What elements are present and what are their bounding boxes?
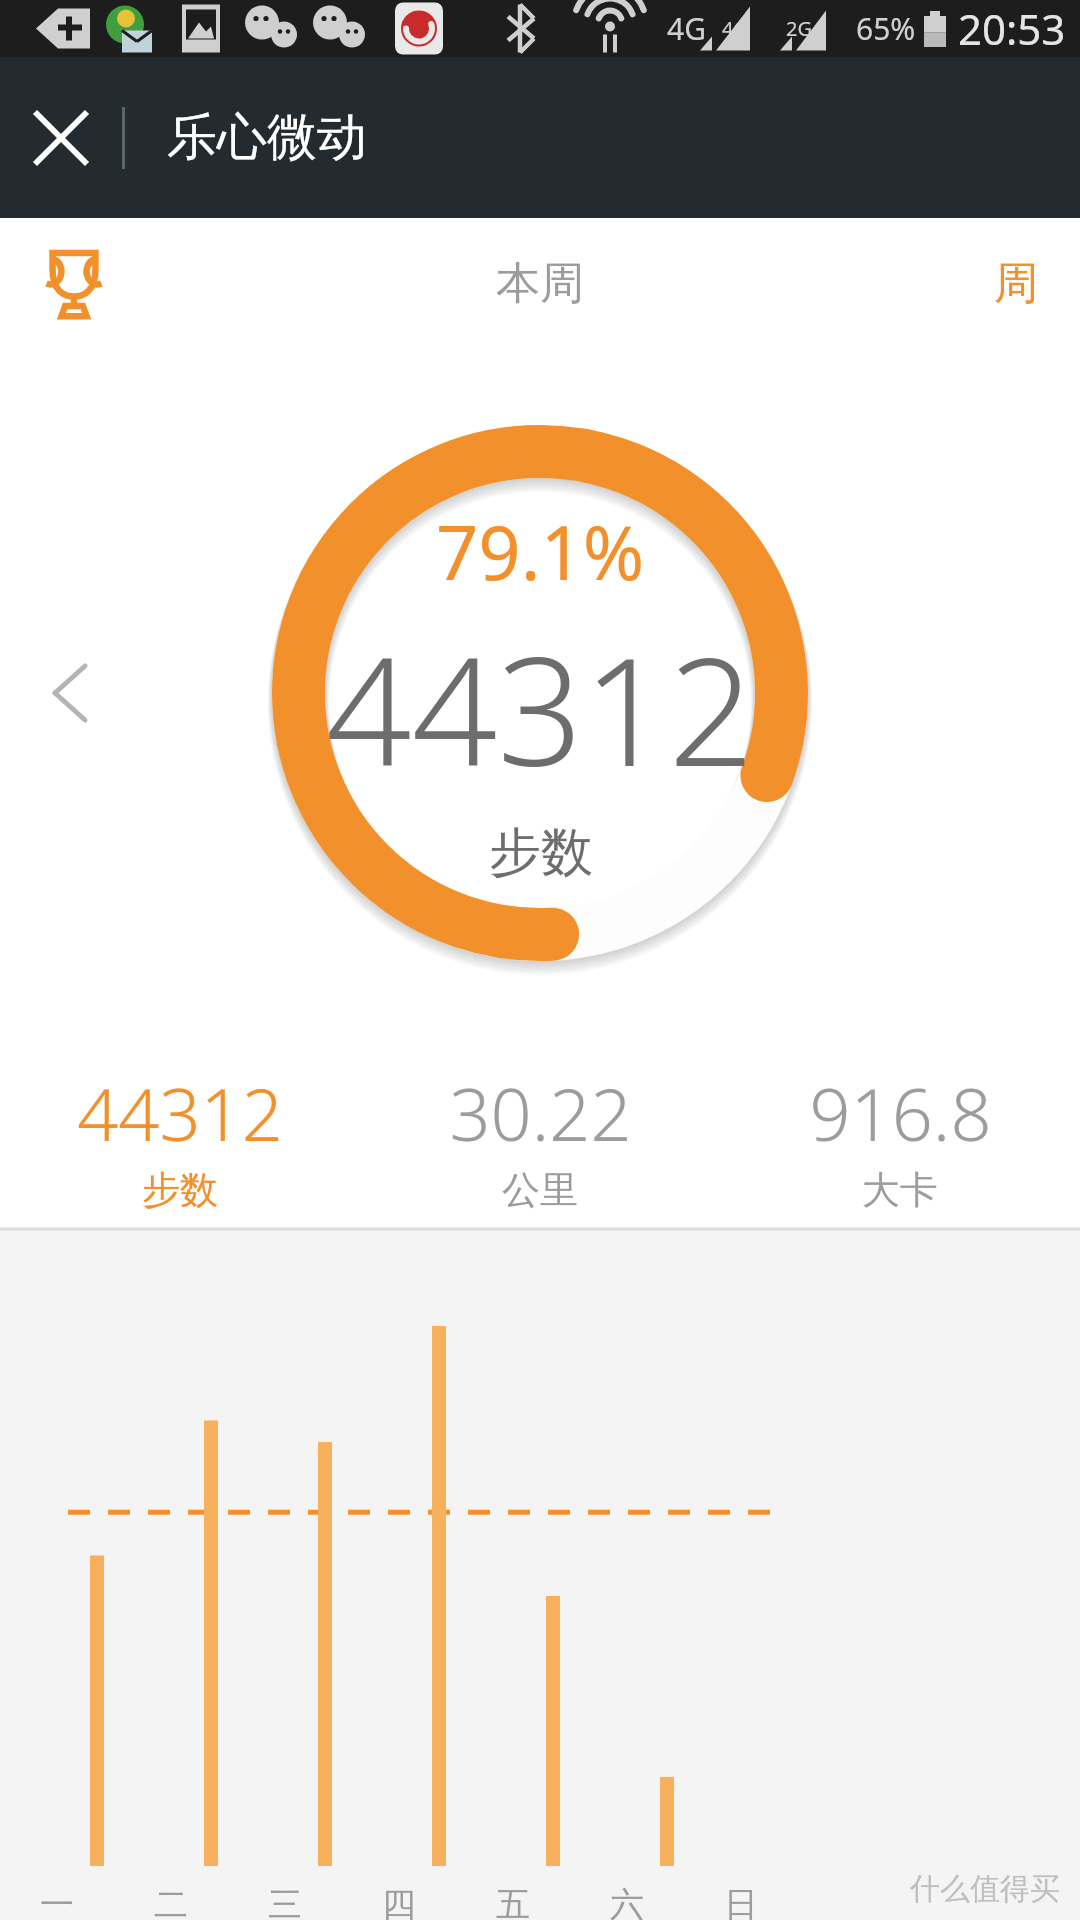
staticText: 20:53 — [958, 0, 1066, 57]
staticText: 四 — [382, 1883, 416, 1920]
staticText: 五 — [496, 1883, 530, 1920]
staticText: 六 — [610, 1883, 644, 1920]
button[interactable]: Achievements — [26, 233, 122, 333]
button[interactable]: 周 — [994, 256, 1038, 311]
button[interactable]: Previous week — [30, 653, 110, 733]
button[interactable]: Close — [0, 57, 122, 218]
staticText: 79.1% — [436, 501, 645, 602]
staticText: 44312 — [77, 1064, 283, 1162]
button[interactable]: 四 — [342, 1883, 456, 1920]
staticText: 公里 — [502, 1166, 578, 1214]
staticText: 二 — [154, 1883, 188, 1920]
staticText: 65% — [856, 8, 916, 49]
button[interactable]: 五 — [456, 1883, 570, 1920]
staticText: 本周 — [496, 256, 584, 311]
staticText: 44312 — [326, 606, 755, 810]
staticText: 大卡 — [862, 1166, 938, 1214]
button[interactable]: 一 — [0, 1883, 114, 1920]
staticText: 30.22 — [449, 1064, 632, 1162]
button[interactable]: 916.8 — [720, 1038, 1080, 1214]
button[interactable]: 日 — [684, 1883, 798, 1920]
staticText: 2G — [786, 15, 812, 42]
button[interactable]: 30.22 — [360, 1038, 720, 1214]
button[interactable]: 44312 — [0, 1038, 360, 1214]
staticText: 4G — [722, 15, 748, 42]
staticText: 周 — [994, 256, 1038, 311]
button[interactable]: 二 — [114, 1883, 228, 1920]
staticText: 乐心微动 — [167, 106, 367, 169]
staticText: 三 — [268, 1883, 302, 1920]
staticText: 步数 — [489, 820, 593, 886]
staticText: 一 — [40, 1883, 74, 1920]
staticText: 什么值得买 — [910, 1870, 1060, 1908]
button[interactable]: 六 — [570, 1883, 684, 1920]
button[interactable]: 三 — [228, 1883, 342, 1920]
staticText: 日 — [724, 1883, 758, 1920]
staticText: 步数 — [142, 1166, 218, 1214]
staticText: 4G — [667, 8, 706, 49]
staticText: 916.8 — [809, 1064, 992, 1162]
